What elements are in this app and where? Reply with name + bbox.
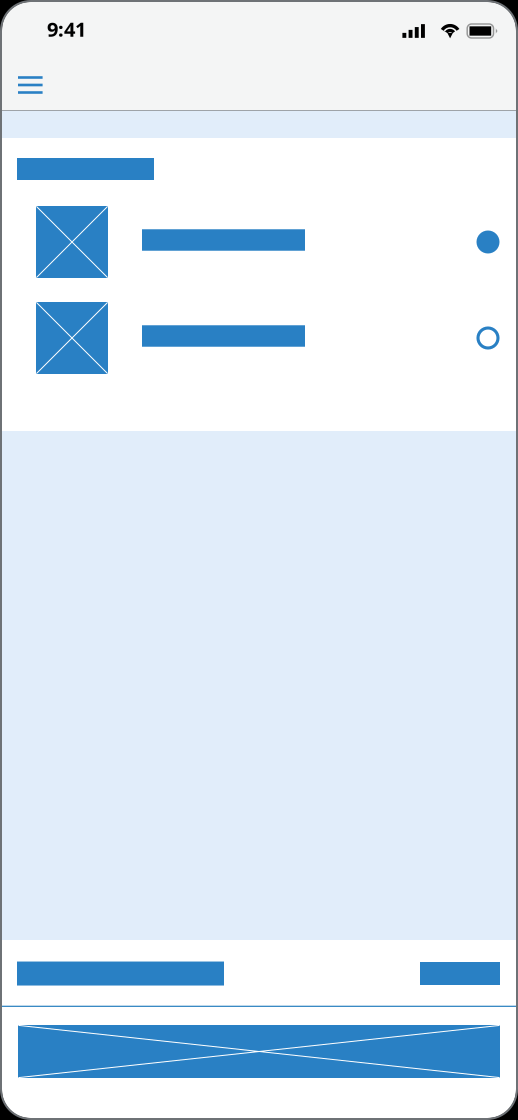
staticText: 9:41	[47, 16, 86, 42]
button[interactable]: Advertisement banner	[18, 1025, 500, 1078]
button[interactable]: Menu	[2, 68, 57, 102]
button[interactable]: Primary action	[17, 961, 224, 985]
button[interactable]: Option one, selected	[2, 206, 516, 278]
button[interactable]: Option two	[2, 302, 516, 374]
